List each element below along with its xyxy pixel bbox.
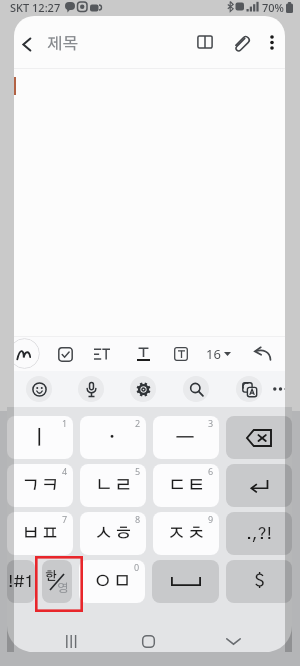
button[interactable]: Underline xyxy=(128,337,158,371)
staticText: 0 xyxy=(134,561,140,573)
staticText: ㄴㄹ xyxy=(94,477,133,495)
button[interactable]: ㅈㅊ xyxy=(153,512,219,555)
staticText: 16 xyxy=(206,345,221,363)
button[interactable]: Emoji xyxy=(26,376,52,402)
button[interactable]: Hide keyboard xyxy=(207,630,259,652)
staticText: 6 xyxy=(208,465,214,477)
button[interactable]: More xyxy=(265,371,285,407)
button[interactable]: Handwriting xyxy=(14,338,40,369)
button[interactable]: Home xyxy=(122,630,174,652)
button[interactable]: Settings xyxy=(130,376,156,402)
staticText: 8 xyxy=(135,513,141,525)
staticText: 70% xyxy=(262,0,284,15)
button[interactable]: Back xyxy=(14,26,39,62)
button[interactable]: Notebook xyxy=(192,24,218,60)
button[interactable]: ㆍ xyxy=(80,416,146,459)
button[interactable]: Search xyxy=(183,376,209,402)
staticText: !#1 xyxy=(8,574,34,590)
button[interactable]: Voice input xyxy=(78,376,104,402)
staticText: ㅣ xyxy=(29,428,51,448)
button[interactable]: Attach xyxy=(227,24,253,60)
staticText: ㅇㅁ xyxy=(93,573,132,591)
staticText: 9 xyxy=(208,513,214,525)
button[interactable]: Paragraph style xyxy=(87,337,117,371)
button[interactable]: !#1 xyxy=(7,560,35,603)
button[interactable]: ㄷㅌ xyxy=(153,464,219,507)
button[interactable]: backspace xyxy=(226,416,292,459)
staticText: $ xyxy=(254,573,265,591)
button[interactable]: Recents xyxy=(45,630,97,652)
button[interactable]: Text box xyxy=(166,337,196,371)
button[interactable]: ㅇㅁ xyxy=(79,560,145,603)
staticText: ㆍ xyxy=(102,428,124,448)
staticText: ㄷㅌ xyxy=(167,477,206,495)
staticText: 1 xyxy=(62,417,68,429)
button[interactable]: 한영 xyxy=(42,560,72,603)
button[interactable]: ㅡ xyxy=(153,416,219,459)
button[interactable]: ㅅㅎ xyxy=(80,512,146,555)
staticText: ㅡ xyxy=(175,428,197,448)
button[interactable]: space xyxy=(152,560,219,603)
staticText: 4 xyxy=(62,465,68,477)
button[interactable]: ㄱㅋ xyxy=(7,464,73,507)
button[interactable]: More options xyxy=(261,24,283,60)
button[interactable]: Undo xyxy=(247,337,277,371)
button[interactable]: enter xyxy=(226,464,292,507)
staticText: 영 xyxy=(57,582,69,594)
staticText: 2 xyxy=(135,417,141,429)
button[interactable]: Checklist xyxy=(50,337,80,371)
button[interactable]: 16 xyxy=(204,337,233,371)
button[interactable]: ㄴㄹ xyxy=(80,464,146,507)
staticText: ㄱㅋ xyxy=(21,477,60,495)
staticText: ㅂㅍ xyxy=(21,525,60,543)
staticText: .,?! xyxy=(246,526,272,542)
staticText: SKT 12:27 xyxy=(10,0,61,15)
button[interactable]: .,?! xyxy=(226,512,292,555)
staticText: ㅅㅎ xyxy=(94,525,133,543)
button[interactable]: Translate xyxy=(236,376,262,402)
staticText: 제목 xyxy=(47,36,79,52)
staticText: 3 xyxy=(208,417,214,429)
staticText: 7 xyxy=(62,513,68,525)
staticText: ㅈㅊ xyxy=(167,525,206,543)
staticText: 한 xyxy=(45,570,57,582)
button[interactable]: ㅂㅍ xyxy=(7,512,73,555)
button[interactable]: ㅣ xyxy=(7,416,73,459)
button[interactable]: $ xyxy=(226,560,292,603)
staticText: 5 xyxy=(135,465,141,477)
